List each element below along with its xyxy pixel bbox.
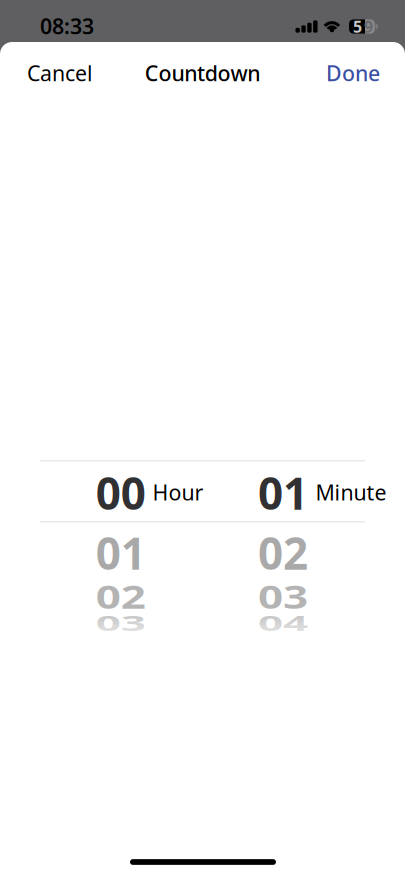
staticText: Hour bbox=[152, 478, 203, 506]
staticText: 01 bbox=[96, 524, 146, 582]
staticText: 00 bbox=[96, 463, 146, 522]
button[interactable]: Done bbox=[326, 59, 380, 87]
staticText: 5 bbox=[353, 16, 362, 37]
staticText: 02 bbox=[258, 524, 308, 582]
staticText: Minute bbox=[315, 478, 386, 506]
staticText: 03 bbox=[258, 567, 308, 626]
staticText: Cancel bbox=[27, 59, 93, 87]
staticText: 01 bbox=[258, 463, 308, 522]
button[interactable]: Cancel bbox=[27, 59, 93, 87]
staticText: 04 bbox=[258, 593, 308, 652]
staticText: 08:33 bbox=[40, 12, 94, 40]
staticText: 9 bbox=[364, 16, 373, 37]
staticText: 03 bbox=[96, 593, 146, 652]
staticText: Done bbox=[326, 59, 380, 87]
staticText: Countdown bbox=[145, 59, 260, 87]
staticText: 02 bbox=[96, 567, 146, 626]
